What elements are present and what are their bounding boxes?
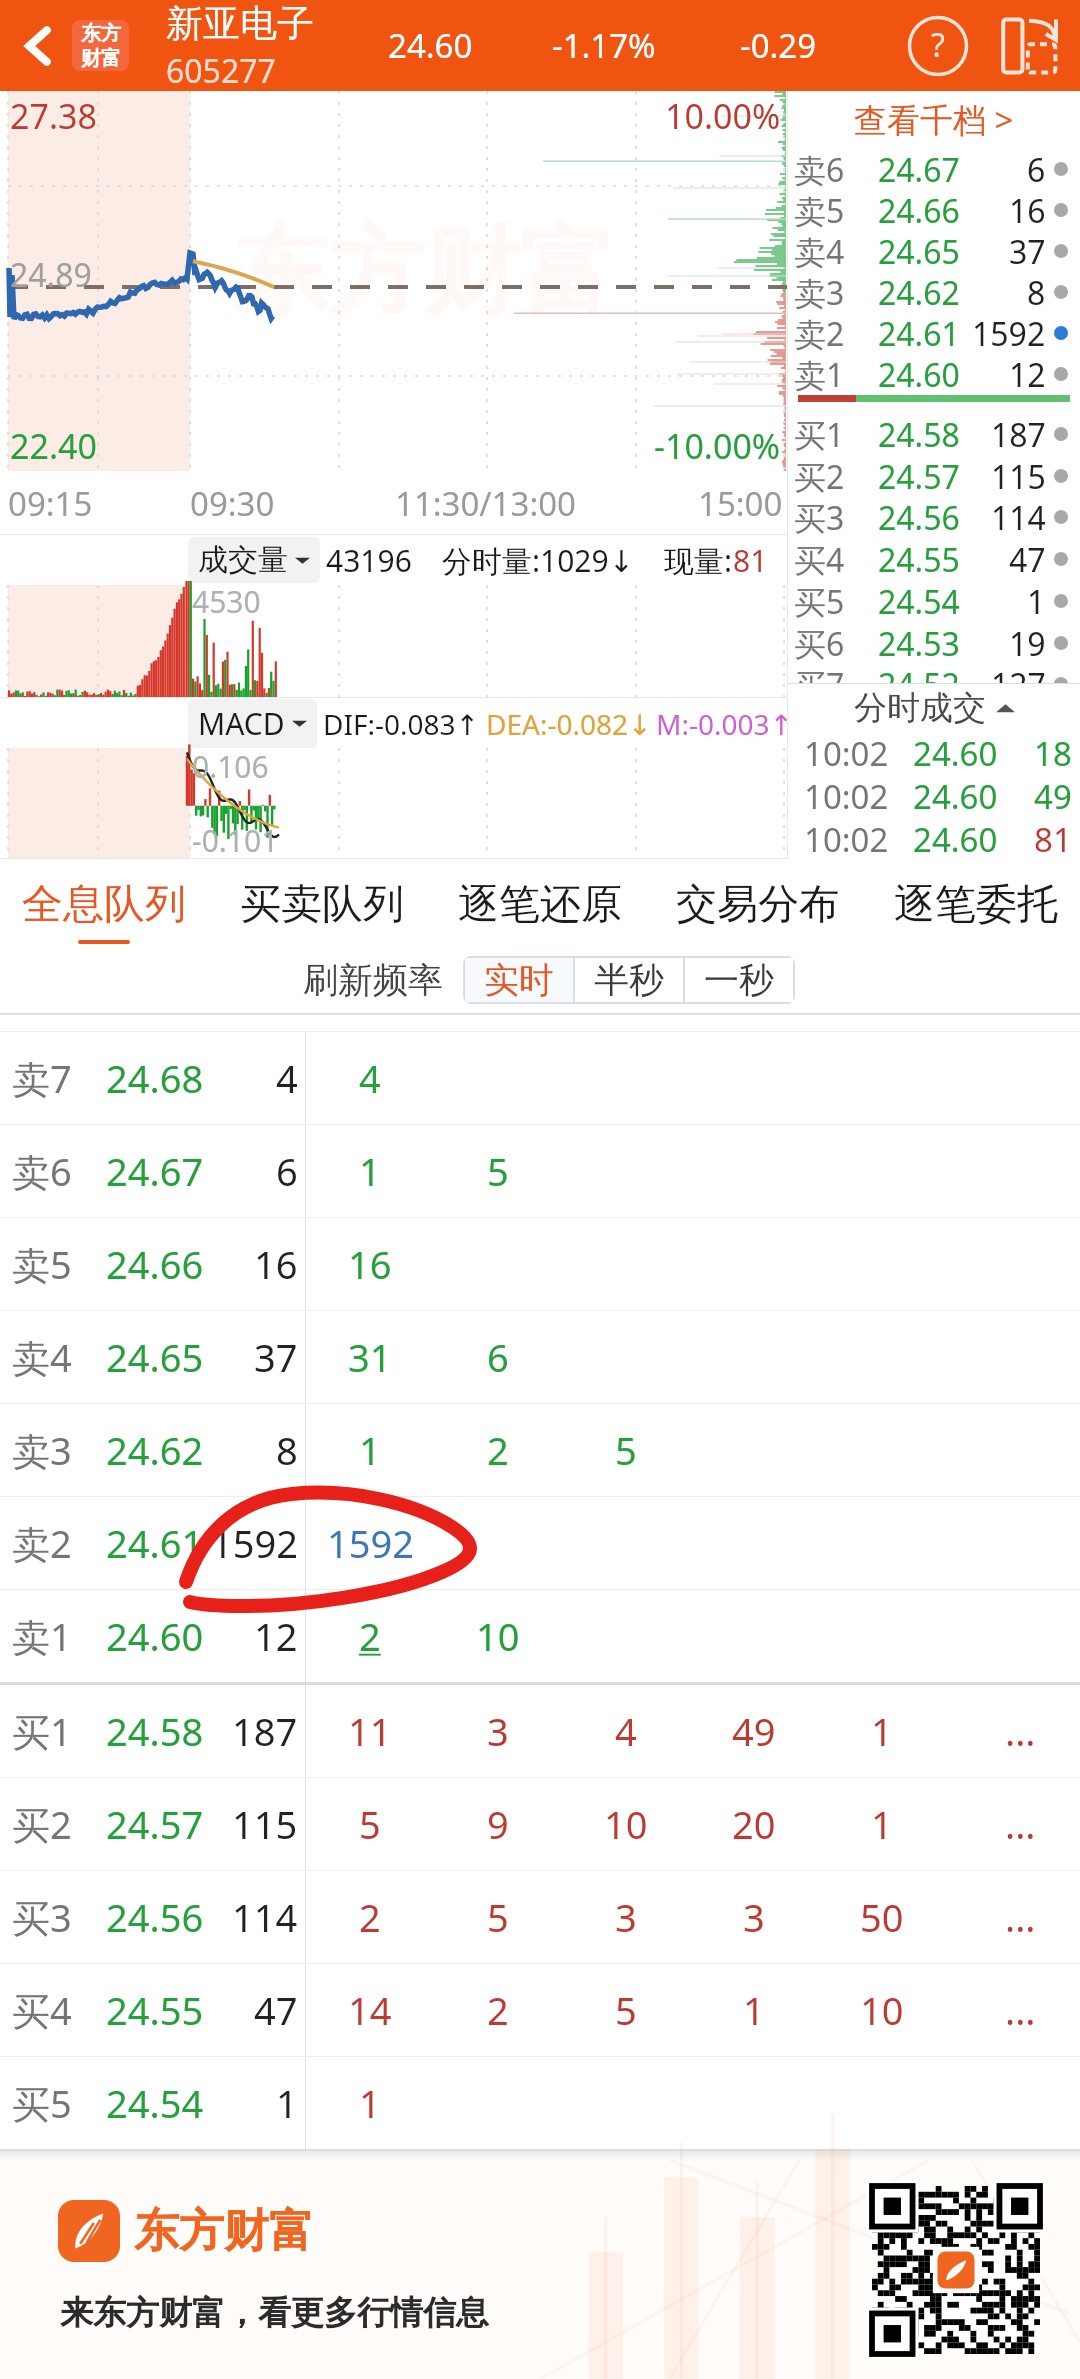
staticText: 24.54 xyxy=(878,580,960,622)
button[interactable]: 卖3 xyxy=(0,1404,1080,1496)
staticText: 刷新频率 xyxy=(303,958,443,1002)
button[interactable]: Help xyxy=(895,3,981,89)
staticText: 卖6 xyxy=(794,148,845,189)
button[interactable]: 买7 xyxy=(788,663,1080,683)
staticText: 187 xyxy=(232,1705,298,1757)
staticText: 09:30 xyxy=(190,481,275,526)
staticText: 127 xyxy=(991,663,1046,683)
staticText: 16 xyxy=(348,1238,392,1290)
staticText: 24.67 xyxy=(106,1145,204,1197)
staticText: 24.56 xyxy=(878,496,960,538)
staticText: 81 xyxy=(1034,817,1072,859)
button[interactable]: 全息队列 xyxy=(8,859,200,950)
staticText: 24.58 xyxy=(878,413,960,455)
staticText: 24.66 xyxy=(878,189,960,230)
button[interactable]: 卖7 xyxy=(0,1032,1080,1124)
button[interactable]: 成交量 xyxy=(188,537,320,583)
button[interactable]: 10:02 xyxy=(788,731,1080,774)
staticText: ? xyxy=(931,23,945,67)
button[interactable]: 买2 xyxy=(0,1778,1080,1870)
staticText: 47 xyxy=(1009,538,1046,580)
staticText: 24.89 xyxy=(10,253,92,297)
staticText: 09:15 xyxy=(8,481,93,526)
staticText: 24.67 xyxy=(878,148,960,189)
button[interactable]: 交易分布 xyxy=(662,859,854,946)
button[interactable]: 半秒 xyxy=(575,958,683,1002)
button[interactable]: MACD xyxy=(188,699,317,748)
staticText: 2 xyxy=(487,1424,509,1476)
staticText: MACD xyxy=(198,703,285,744)
button[interactable]: 卖5 xyxy=(788,189,1080,230)
staticText: 24.60 xyxy=(106,1610,204,1662)
button[interactable]: 卖6 xyxy=(788,148,1080,189)
button[interactable]: 东方 xyxy=(72,20,129,71)
staticText: 1 xyxy=(871,1705,893,1757)
staticText: 9 xyxy=(487,1798,509,1850)
button[interactable]: 10:02 xyxy=(788,774,1080,817)
staticText: 8 xyxy=(276,1424,298,1476)
button[interactable]: 买3 xyxy=(788,496,1080,538)
button[interactable]: 卖3 xyxy=(788,271,1080,312)
staticText: 分时成交 xyxy=(854,687,986,729)
button[interactable]: 卖2 xyxy=(788,312,1080,353)
button[interactable]: 买4 xyxy=(788,538,1080,580)
button[interactable]: Back xyxy=(0,0,76,91)
staticText: -0.29 xyxy=(740,23,817,68)
staticText: 买3 xyxy=(12,1891,72,1943)
button[interactable]: 卖5 xyxy=(0,1218,1080,1310)
staticText: 买2 xyxy=(12,1798,72,1850)
staticText: 4 xyxy=(615,1705,637,1757)
button[interactable]: 逐笔委托 xyxy=(880,859,1072,946)
staticText: 买5 xyxy=(794,580,845,622)
staticText: 1 xyxy=(276,2077,298,2129)
staticText: 卖3 xyxy=(794,271,845,312)
button[interactable]: 买1 xyxy=(788,413,1080,455)
staticText: ... xyxy=(1005,1705,1036,1757)
staticText: 20 xyxy=(732,1798,776,1850)
staticText: 10:02 xyxy=(804,731,889,774)
staticText: 605277 xyxy=(166,49,276,91)
button[interactable]: 一秒 xyxy=(685,958,793,1002)
button[interactable]: 卖4 xyxy=(788,230,1080,271)
button[interactable]: 买1 xyxy=(0,1685,1080,1777)
button[interactable]: 卖6 xyxy=(0,1125,1080,1217)
button[interactable]: 买2 xyxy=(788,455,1080,497)
button[interactable]: 买卖队列 xyxy=(226,859,418,946)
staticText: -1.17% xyxy=(552,23,656,68)
button[interactable]: 买6 xyxy=(788,622,1080,664)
button[interactable]: 查看千档 > xyxy=(788,91,1080,147)
staticText: 实时 xyxy=(484,958,554,1002)
staticText: 31 xyxy=(348,1331,392,1383)
button[interactable]: 分时成交 xyxy=(788,684,1080,731)
staticText: 4 xyxy=(276,1052,298,1104)
button[interactable]: 买5 xyxy=(788,580,1080,622)
staticText: 2 xyxy=(359,1891,381,1943)
staticText: 6 xyxy=(487,1331,509,1383)
button[interactable]: 卖1 xyxy=(788,353,1080,394)
staticText: 新亚电子 xyxy=(166,0,314,47)
staticText: 卖2 xyxy=(794,312,845,353)
staticText: 东方财富 xyxy=(134,2203,314,2260)
button[interactable]: 卖4 xyxy=(0,1311,1080,1403)
button[interactable]: 10:02 xyxy=(788,817,1080,859)
button[interactable]: 买4 xyxy=(0,1964,1080,2056)
button[interactable]: 卖1 xyxy=(0,1590,1080,1682)
button[interactable]: 买3 xyxy=(0,1871,1080,1963)
button[interactable]: 实时 xyxy=(465,958,573,1002)
button[interactable]: 买5 xyxy=(0,2057,1080,2149)
staticText: 10:02 xyxy=(804,817,889,859)
staticText: 24.60 xyxy=(878,353,960,394)
button[interactable]: 逐笔还原 xyxy=(444,859,636,946)
staticText: 3 xyxy=(615,1891,637,1943)
staticText: 逐笔还原 xyxy=(458,879,622,931)
staticText: 卖5 xyxy=(794,189,845,230)
staticText: 24.52 xyxy=(878,663,960,683)
staticText: 卖5 xyxy=(12,1238,72,1290)
staticText: 1592 xyxy=(327,1517,414,1569)
staticText: 5 xyxy=(487,1145,509,1197)
button[interactable]: 卖2 xyxy=(0,1497,1080,1589)
staticText: 24.65 xyxy=(878,230,960,271)
staticText: 24.61 xyxy=(106,1517,204,1569)
button[interactable]: Rotate to landscape xyxy=(985,3,1071,89)
staticText: 买4 xyxy=(12,1984,72,2036)
